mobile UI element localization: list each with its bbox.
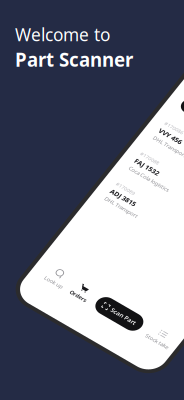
button[interactable]: #170086 [10,262,184,357]
button[interactable]: #170088 [10,359,184,400]
staticText: Part Scanner [15,47,133,72]
button[interactable]: Account [42,202,78,238]
staticText: VVY 456 [40,298,101,319]
staticText: DHL Transport [40,323,130,341]
staticText: #170086 [40,278,90,294]
staticText: Welcome to [15,23,110,46]
